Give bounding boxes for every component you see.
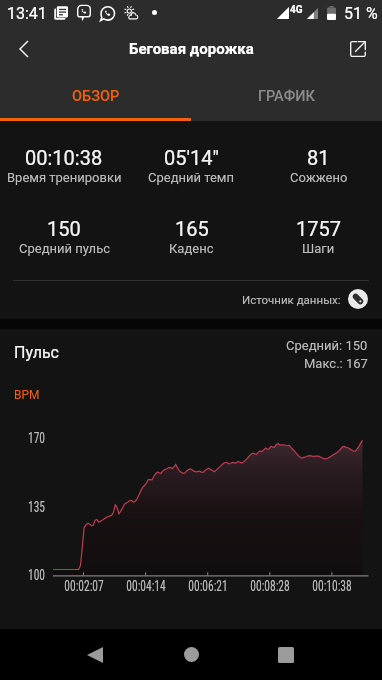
staticText: Средний: 150 — [286, 338, 368, 353]
staticText: 05'14" — [164, 146, 219, 169]
staticText: 51 % — [344, 4, 378, 23]
staticText: 135 — [9, 499, 45, 516]
staticText: Пульс — [14, 343, 59, 362]
staticText: 00:04:14 — [126, 578, 166, 595]
staticText: ГРАФИК — [258, 88, 315, 105]
staticText: 170 — [9, 430, 45, 447]
button[interactable]: Back — [0, 26, 48, 71]
staticText: 00:08:28 — [250, 578, 290, 595]
staticText: BPM — [14, 388, 40, 402]
staticText: ОБЗОР — [72, 88, 120, 105]
staticText: 1757 — [296, 217, 341, 240]
button[interactable]: Recent apps — [262, 629, 310, 680]
staticText: 00:02:07 — [64, 578, 104, 595]
button[interactable]: ОБЗОР — [0, 71, 191, 121]
staticText: Время тренировки — [7, 170, 122, 185]
staticText: 165 — [175, 217, 209, 240]
staticText: 00:10:38 — [25, 146, 103, 169]
staticText: 100 — [9, 567, 45, 584]
button[interactable]: Back — [71, 629, 119, 680]
staticText: Сожжено — [290, 170, 348, 185]
staticText: Беговая дорожка — [129, 40, 254, 58]
staticText: 00:06:21 — [188, 578, 228, 595]
staticText: Шаги — [302, 241, 335, 256]
button[interactable]: Home — [167, 629, 215, 680]
staticText: Средний пульс — [19, 241, 110, 256]
button[interactable]: Источник данных: — [242, 285, 368, 313]
staticText: Источник данных: — [242, 293, 341, 306]
staticText: 81 — [307, 146, 330, 169]
staticText: Макс.: 167 — [304, 356, 368, 371]
staticText: Каденс — [169, 241, 214, 256]
staticText: Средний темп — [148, 170, 235, 185]
staticText: 13:41 — [7, 4, 47, 23]
staticText: 4G — [290, 4, 303, 16]
button[interactable]: ГРАФИК — [191, 71, 382, 121]
staticText: 00:10:38 — [312, 578, 352, 595]
staticText: 150 — [47, 217, 81, 240]
button[interactable]: Open in new window — [334, 26, 382, 71]
